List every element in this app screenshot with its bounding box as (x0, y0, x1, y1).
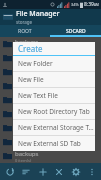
staticText: File Manager (16, 9, 60, 19)
button[interactable]: Refresh (2, 164, 17, 179)
staticText: AM (94, 3, 99, 7)
staticText: 34% (71, 2, 79, 7)
staticText: Create (18, 43, 43, 54)
staticText: ROOT (18, 28, 32, 35)
staticText: backups (15, 122, 39, 130)
staticText: New External Storage Tab (18, 123, 95, 132)
staticText: 0 item(s) (15, 144, 32, 149)
staticText: 0 item(s) (15, 102, 32, 107)
staticText: storage (16, 19, 33, 25)
staticText: backups (15, 52, 39, 60)
button[interactable]: Sort (18, 164, 33, 179)
staticText: SDCARD (66, 28, 86, 35)
staticText: New External SD Tab (18, 139, 81, 148)
staticText: 0 item(s) (15, 116, 32, 121)
button[interactable]: New External SD Tab (13, 136, 95, 151)
button[interactable]: New File (13, 72, 95, 87)
staticText: New File (18, 75, 44, 84)
staticText: backups (15, 66, 39, 74)
staticText: backups (15, 38, 39, 46)
staticText: New Text File (18, 91, 58, 100)
staticText: New Folder (18, 59, 53, 68)
button[interactable]: New Text File (13, 88, 95, 103)
button[interactable]: ROOT (0, 25, 50, 37)
staticText: 8:39 (84, 1, 94, 8)
button[interactable]: New External Storage Tab (13, 120, 95, 135)
button[interactable]: SDCARD (50, 25, 101, 37)
button[interactable]: New Folder (13, 56, 95, 71)
staticText: backups (15, 136, 39, 144)
button[interactable]: More options (84, 164, 99, 179)
staticText: backups (15, 94, 39, 102)
button[interactable]: Add (35, 164, 50, 179)
staticText: 0 item(s) (15, 158, 32, 163)
staticText: 0 item(s) (15, 74, 32, 79)
staticText: 0 item(s) (15, 46, 32, 51)
button[interactable]: Close (51, 164, 66, 179)
staticText: backups (15, 80, 39, 88)
button[interactable]: New Root Directory Tab (13, 104, 95, 119)
staticText: New Root Directory Tab (18, 107, 90, 116)
staticText: backups (15, 108, 39, 116)
staticText: 0 item(s) (15, 60, 32, 65)
button[interactable]: Settings (68, 164, 83, 179)
staticText: backups (15, 150, 39, 158)
